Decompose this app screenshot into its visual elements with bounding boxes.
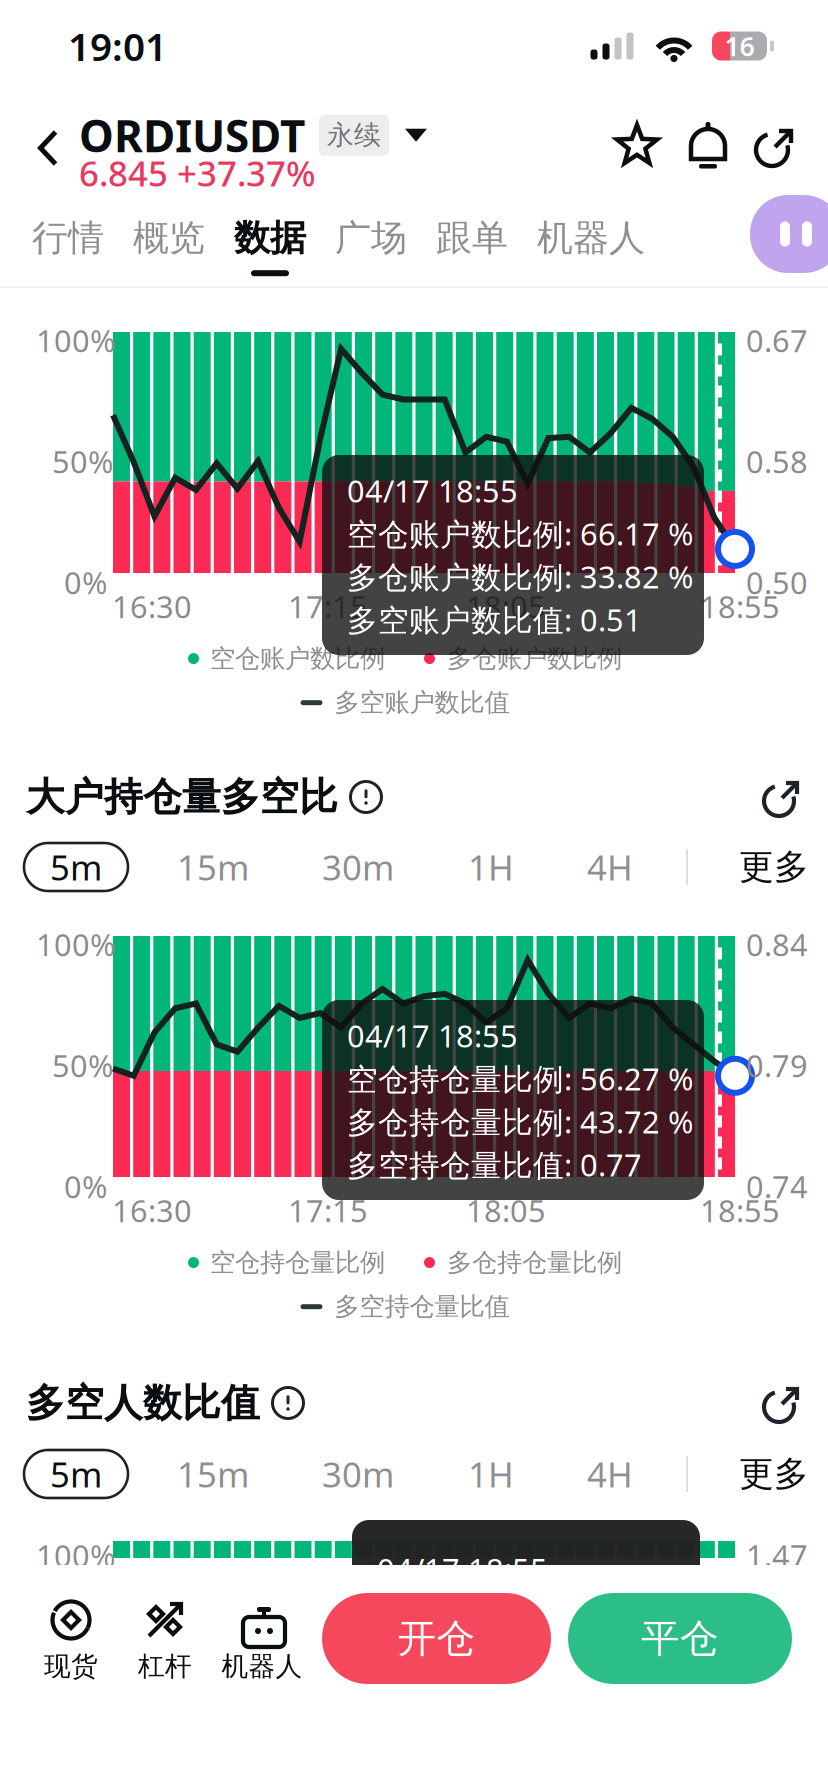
staticText: 多空持仓量比值: 0.77 <box>347 1144 642 1185</box>
staticText: 多仓持仓量比例 <box>447 1247 622 1278</box>
staticText: 开仓 <box>397 1615 475 1662</box>
staticText: 0.74 <box>746 1166 808 1207</box>
staticText: 空仓持仓量比例: 56.27 % <box>347 1058 693 1099</box>
staticText: 18:55 <box>700 586 780 627</box>
staticText: 30m <box>322 1451 394 1497</box>
staticText: 机器人 <box>221 1650 302 1683</box>
staticText: 4H <box>587 1451 633 1497</box>
staticText: 平仓 <box>641 1615 719 1662</box>
button[interactable]: 1H <box>447 843 535 891</box>
button[interactable]: 15m <box>161 843 265 891</box>
button[interactable]: 概览 <box>133 216 205 276</box>
staticText: 更多 <box>739 846 809 888</box>
staticText: 30m <box>322 844 394 890</box>
staticText: 04/17 18:55 <box>347 470 518 511</box>
staticText: 04/17 18:55 <box>377 1549 548 1589</box>
staticText: 更多 <box>739 1453 809 1495</box>
staticText: 空仓账户数比例 <box>210 643 385 674</box>
staticText: 大户持仓量多空比 <box>26 773 338 821</box>
staticText: 100% <box>36 924 115 965</box>
staticText: 1H <box>468 844 514 890</box>
staticText: 16 <box>724 28 754 64</box>
staticText: 0.84 <box>746 924 808 965</box>
staticText: 多空人数比值 <box>26 1379 260 1427</box>
button[interactable]: Expand chart <box>760 775 802 819</box>
button[interactable]: 平仓 <box>568 1593 792 1684</box>
button[interactable]: 5m <box>24 1450 128 1498</box>
staticText: 6.845 +37.37% <box>79 150 316 196</box>
staticText: 永续 <box>327 119 381 152</box>
button[interactable]: 机器人 <box>537 216 645 276</box>
staticText: 15m <box>177 1451 249 1497</box>
staticText: 18:05 <box>466 1190 546 1231</box>
button[interactable]: 30m <box>306 843 410 891</box>
button[interactable]: 4H <box>566 1450 654 1498</box>
staticText: 16:30 <box>112 586 192 627</box>
staticText: 17:15 <box>288 1190 368 1231</box>
staticText: 18:55 <box>700 1190 780 1231</box>
staticText: 50% <box>52 441 113 482</box>
staticText: 0.67 <box>746 320 808 361</box>
button[interactable]: 30m <box>306 1450 410 1498</box>
staticText: 17:15 <box>288 586 368 627</box>
staticText: 15m <box>177 844 249 890</box>
button[interactable]: 更多 <box>730 1450 818 1498</box>
staticText: 机器人 <box>537 216 645 260</box>
button[interactable]: 现货 <box>24 1597 118 1683</box>
staticText: 数据 <box>234 216 306 260</box>
staticText: 1.47 <box>746 1535 808 1576</box>
staticText: 04/17 18:55 <box>347 1015 518 1056</box>
staticText: 概览 <box>133 216 205 260</box>
staticText: 多仓账户数比例: 33.82 % <box>347 556 693 597</box>
button[interactable]: 机器人 <box>212 1597 312 1683</box>
button[interactable]: 4H <box>566 843 654 891</box>
button[interactable]: 广场 <box>335 216 407 276</box>
staticText: 0.58 <box>746 441 808 482</box>
staticText: 多仓账户数比例 <box>447 643 622 674</box>
button[interactable]: 数据 <box>234 216 306 276</box>
staticText: 5m <box>50 1451 102 1497</box>
staticText: 1H <box>468 1451 514 1497</box>
staticText: 16:30 <box>112 1190 192 1231</box>
button[interactable]: 1H <box>447 1450 535 1498</box>
staticText: 19:01 <box>68 20 167 72</box>
staticText: 空仓账户数比例: 66.17 % <box>347 513 693 554</box>
staticText: 5m <box>50 844 102 890</box>
staticText: 多空账户数比值 <box>334 687 509 718</box>
button[interactable]: Price alert <box>686 122 730 170</box>
staticText: 100% <box>36 320 115 361</box>
staticText: 18:05 <box>466 586 546 627</box>
staticText: 现货 <box>44 1650 98 1683</box>
button[interactable]: 更多 <box>730 843 818 891</box>
staticText: 4H <box>587 844 633 890</box>
staticText: 多仓持仓量比例: 43.72 % <box>347 1101 693 1142</box>
staticText: 100% <box>36 1535 115 1576</box>
staticText: 空仓持仓量比例 <box>210 1247 385 1278</box>
staticText: 行情 <box>32 216 104 260</box>
staticText: 跟单 <box>436 216 508 260</box>
staticText: 0% <box>64 562 107 603</box>
button[interactable]: 15m <box>161 1450 265 1498</box>
button[interactable]: Share <box>752 123 796 169</box>
button[interactable]: 开仓 <box>322 1593 551 1684</box>
staticText: 杠杆 <box>138 1650 192 1683</box>
button[interactable]: 跟单 <box>436 216 508 276</box>
staticText: 50% <box>52 1045 113 1086</box>
button[interactable]: AI assistant <box>750 195 828 273</box>
staticText: ORDIUSDT <box>79 106 305 164</box>
button[interactable]: Back <box>18 118 78 178</box>
button[interactable]: Expand chart <box>760 1381 802 1425</box>
button[interactable]: 行情 <box>32 216 104 276</box>
button[interactable]: Favorite <box>614 122 662 170</box>
staticText: 广场 <box>335 216 407 260</box>
staticText: 0% <box>64 1166 107 1207</box>
staticText: 0.79 <box>746 1045 808 1086</box>
button[interactable]: 杠杆 <box>118 1597 212 1683</box>
button[interactable]: 5m <box>24 843 128 891</box>
staticText: 0.50 <box>746 562 808 603</box>
staticText: 多空持仓量比值 <box>334 1291 509 1322</box>
staticText: 多空账户数比值: 0.51 <box>347 599 642 640</box>
